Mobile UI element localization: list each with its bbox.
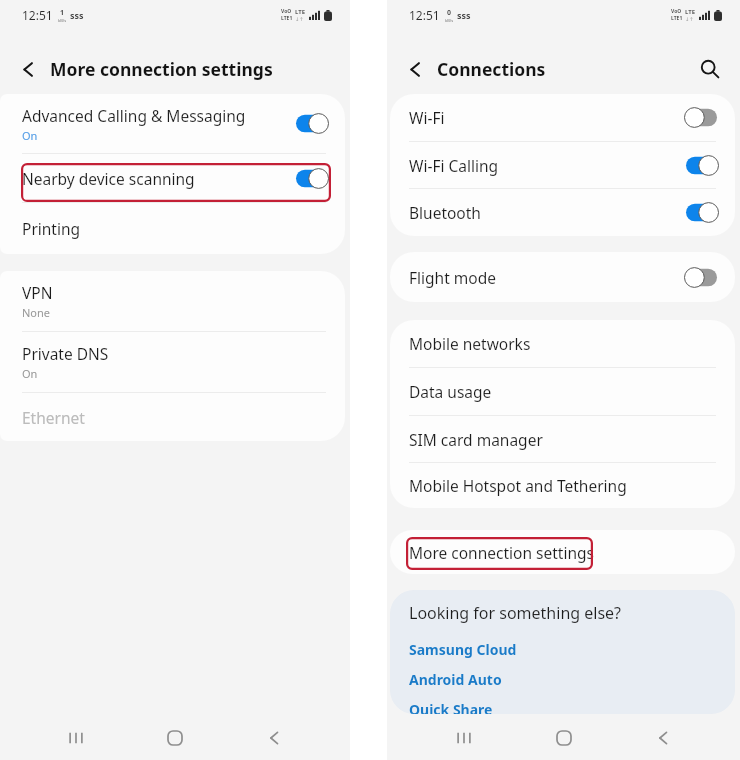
button[interactable]: Advanced Calling & Messaging — [0, 94, 345, 153]
staticText: 12:51 — [22, 7, 53, 23]
staticText: LTE — [295, 8, 306, 16]
staticText: VPN — [22, 282, 53, 303]
staticText: SIM card manager — [409, 429, 543, 450]
staticText: Wi-Fi — [409, 107, 445, 128]
button[interactable]: Turn off — [296, 114, 327, 133]
staticText: More connection settings — [50, 57, 273, 81]
button[interactable]: Home — [152, 716, 198, 760]
button[interactable]: Private DNS — [0, 332, 345, 392]
button[interactable]: Recent apps — [441, 716, 487, 760]
staticText: LTE1 — [671, 15, 683, 22]
staticText: Private DNS — [22, 343, 109, 364]
button[interactable]: Back — [399, 53, 431, 85]
staticText: Connections — [437, 57, 546, 81]
staticText: Wi-Fi Calling — [409, 155, 499, 176]
staticText: LTE1 — [281, 15, 293, 22]
button[interactable]: Back — [251, 716, 297, 760]
staticText: Looking for something else? — [409, 602, 622, 624]
staticText: ↓↑ — [295, 16, 304, 22]
staticText: ↓↑ — [685, 16, 694, 22]
button[interactable]: Turn on — [686, 108, 717, 127]
staticText: VoO — [281, 8, 292, 15]
staticText: Samsung Cloud — [409, 640, 517, 659]
staticText: Android Auto — [409, 670, 502, 689]
button[interactable]: Data usage — [390, 368, 735, 415]
staticText: sss — [457, 9, 471, 21]
button[interactable]: Turn on — [686, 268, 717, 287]
staticText: kB/s — [445, 18, 454, 23]
staticText: 0 — [447, 8, 452, 18]
button[interactable]: Nearby device scanning — [0, 154, 345, 202]
button[interactable]: Search — [694, 53, 726, 85]
button[interactable]: Wi-Fi — [390, 94, 735, 141]
button[interactable]: Turn off — [686, 203, 717, 222]
button[interactable]: Wi-Fi Calling — [390, 142, 735, 188]
staticText: Quick Share — [409, 700, 493, 714]
button[interactable]: Mobile networks — [390, 320, 735, 367]
staticText: Advanced Calling & Messaging — [22, 105, 246, 126]
staticText: On — [22, 366, 38, 381]
staticText: Ethernet — [22, 407, 85, 428]
button[interactable]: Back — [640, 716, 686, 760]
staticText: Flight mode — [409, 267, 496, 288]
staticText: On — [22, 128, 38, 143]
staticText: None — [22, 305, 51, 320]
staticText: 12:51 — [409, 7, 440, 23]
staticText: Nearby device scanning — [22, 168, 195, 189]
button[interactable]: Bluetooth — [390, 189, 735, 236]
staticText: Mobile networks — [409, 333, 531, 354]
staticText: Bluetooth — [409, 202, 481, 223]
button[interactable]: Printing — [0, 203, 345, 254]
staticText: Data usage — [409, 381, 492, 402]
button[interactable]: Mobile Hotspot and Tethering — [390, 463, 735, 508]
button[interactable]: Back — [12, 53, 44, 85]
button[interactable]: Flight mode — [390, 252, 735, 302]
button[interactable]: More connection settings — [390, 530, 735, 574]
staticText: LTE — [685, 8, 696, 16]
button[interactable]: SIM card manager — [390, 416, 735, 462]
button[interactable]: Home — [541, 716, 587, 760]
button[interactable]: VPN — [0, 271, 345, 331]
staticText: Printing — [22, 218, 81, 239]
button[interactable]: Ethernet — [0, 393, 345, 441]
staticText: kB/s — [58, 18, 67, 23]
button[interactable]: Recent apps — [53, 716, 99, 760]
staticText: More connection settings — [409, 542, 594, 563]
staticText: Mobile Hotspot and Tethering — [409, 475, 627, 496]
staticText: VoO — [671, 8, 682, 15]
staticText: 1 — [60, 8, 65, 18]
button[interactable]: Turn off — [686, 156, 717, 175]
staticText: sss — [70, 9, 84, 21]
button[interactable]: Turn off — [296, 169, 327, 188]
